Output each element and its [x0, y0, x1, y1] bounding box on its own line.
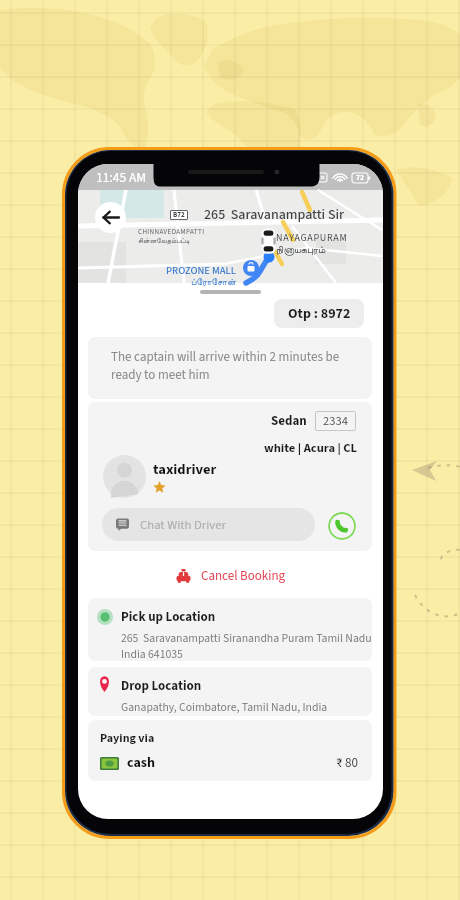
- button[interactable]: Cancel Booking: [78, 565, 383, 587]
- staticText: ₹ 80: [336, 754, 358, 773]
- staticText: Otp : 8972: [288, 304, 351, 324]
- staticText: Pick up Location: [121, 608, 216, 627]
- staticText: white | Acura | CL: [264, 439, 358, 457]
- staticText: Chat With Driver: [140, 516, 226, 534]
- staticText: ப்ரோசோன்: [191, 278, 236, 287]
- staticText: 72: [356, 172, 364, 183]
- button[interactable]: Chat With Driver: [102, 508, 315, 541]
- staticText: நினாயகபுரம்: [276, 245, 326, 255]
- staticText: Paying via: [100, 730, 155, 747]
- staticText: taxidriver: [153, 459, 217, 480]
- staticText: The captain will arrive within 2 minutes…: [111, 348, 346, 384]
- staticText: Sedan: [271, 412, 307, 431]
- staticText: Cancel Booking: [201, 567, 286, 586]
- button[interactable]: Otp : 8972: [274, 299, 364, 328]
- staticText: சின்னவேதம்பட்டி: [138, 237, 190, 244]
- staticText: 2334: [323, 412, 348, 430]
- staticText: Ganapathy, Coimbatore, Tamil Nadu, India: [121, 699, 328, 716]
- staticText: 265 Saravanampatti Siranandha Puram Tami…: [121, 630, 372, 661]
- staticText: NAYAGAPURAM: [276, 231, 348, 245]
- button[interactable]: Back: [95, 202, 126, 233]
- staticText: Drop Location: [121, 677, 202, 696]
- staticText: B72: [173, 210, 185, 220]
- staticText: 265 Saravanampatti Sir: [204, 205, 345, 225]
- staticText: CHINNAVEDAMPATTI: [138, 227, 205, 237]
- staticText: PROZONE MALL: [166, 263, 236, 278]
- button[interactable]: Call driver: [328, 512, 356, 540]
- staticText: 11:45 AM: [96, 168, 147, 187]
- staticText: cash: [127, 753, 155, 773]
